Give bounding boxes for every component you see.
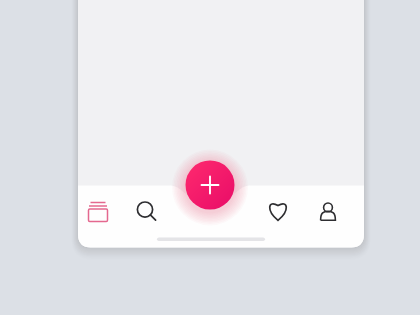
button[interactable]: Profile [306, 188, 350, 234]
button[interactable]: Favorites [256, 188, 300, 234]
button[interactable]: Feed [76, 188, 120, 234]
button[interactable]: Search [123, 188, 167, 234]
button[interactable]: Create new post [185, 160, 234, 209]
